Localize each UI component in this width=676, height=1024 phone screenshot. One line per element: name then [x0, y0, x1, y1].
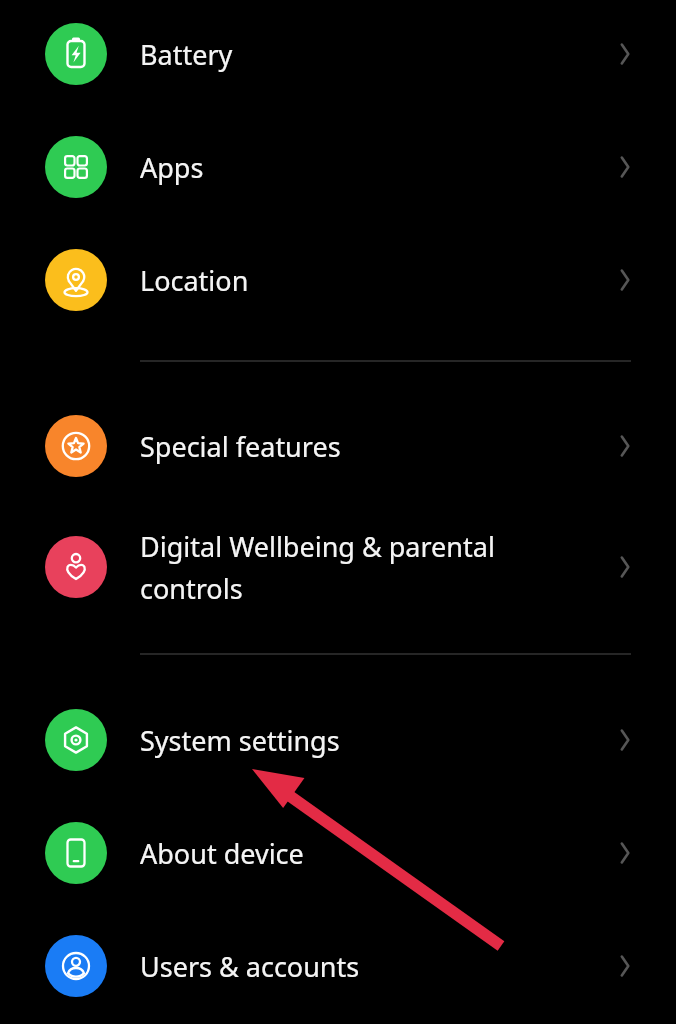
staticText: About device — [140, 835, 304, 872]
staticText: Apps — [140, 149, 204, 186]
button[interactable]: Users & accounts — [0, 919, 676, 1013]
staticText: Digital Wellbeing & parental controls — [140, 528, 495, 607]
button[interactable]: Apps — [0, 120, 676, 214]
staticText: Special features — [140, 428, 341, 465]
button[interactable]: About device — [0, 806, 676, 900]
staticText: System settings — [140, 722, 340, 759]
staticText: Location — [140, 262, 249, 299]
button[interactable]: Location — [0, 233, 676, 327]
button[interactable]: Digital Wellbeing & parental controls — [0, 513, 676, 621]
button[interactable]: Special features — [0, 399, 676, 493]
button[interactable]: System settings — [0, 693, 676, 787]
button[interactable]: Battery — [0, 7, 676, 101]
staticText: Users & accounts — [140, 948, 360, 985]
staticText: Battery — [140, 36, 233, 73]
